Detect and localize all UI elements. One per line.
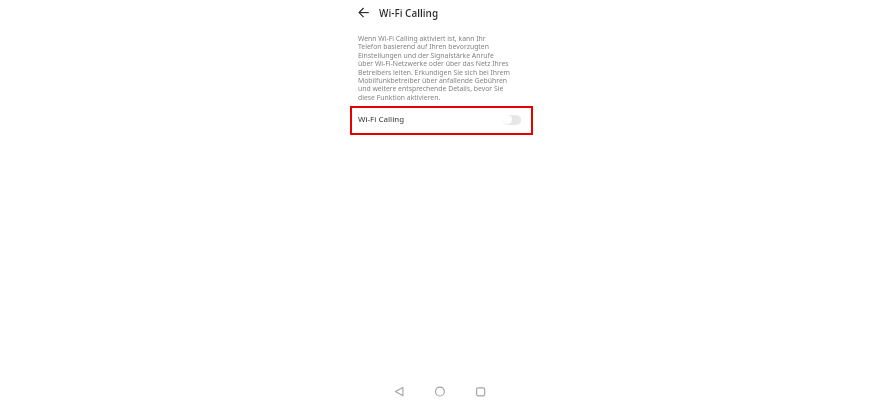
staticText: Wi-Fi Calling bbox=[379, 6, 439, 19]
staticText: Wenn Wi-Fi Calling aktiviert ist, kann I… bbox=[358, 34, 486, 43]
staticText: Betreibers leiten. Erkundigen Sie sich b… bbox=[358, 68, 511, 77]
button[interactable]: Back bbox=[391, 383, 407, 399]
staticText: Wi-Fi Calling bbox=[358, 114, 405, 125]
staticText: diese Funktion aktivieren. bbox=[358, 93, 441, 102]
button[interactable]: Toggle Wi-Fi Calling, off bbox=[503, 115, 521, 125]
button[interactable]: Wi-Fi Calling switch row bbox=[350, 106, 533, 135]
staticText: Telefon basierend auf Ihren bevorzugten bbox=[358, 42, 489, 51]
button[interactable]: Recent apps bbox=[472, 383, 488, 399]
staticText: und weitere entsprechende Details, bevor… bbox=[358, 84, 504, 93]
button[interactable]: Navigate up bbox=[356, 4, 373, 21]
button[interactable]: Home bbox=[432, 383, 448, 399]
staticText: Einstellungen und der Signalstärke Anruf… bbox=[358, 51, 494, 60]
staticText: Mobilfunkbetreiber über anfallende Gebüh… bbox=[358, 76, 508, 85]
staticText: über Wi-Fi-Netzwerke oder über das Netz … bbox=[358, 59, 509, 68]
